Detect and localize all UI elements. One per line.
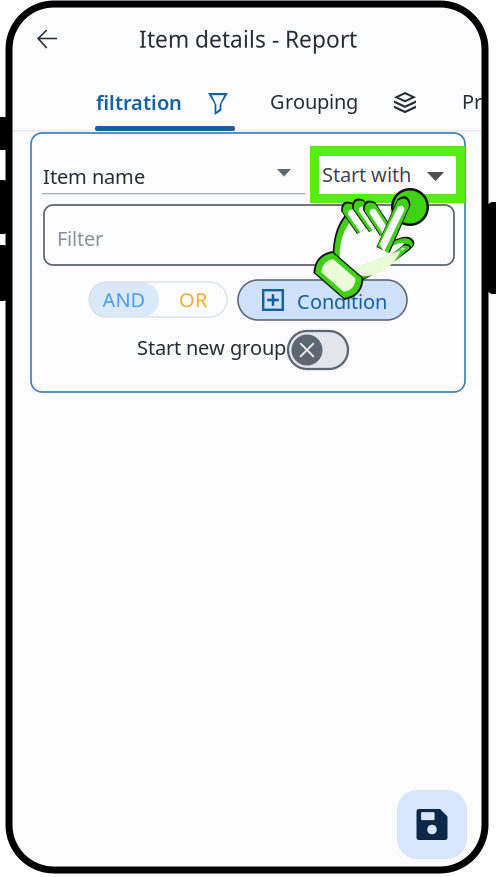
staticText: Filter [57, 225, 103, 252]
staticText: AND [102, 286, 145, 313]
staticText: Condition [297, 288, 387, 315]
button[interactable]: Filter [44, 205, 454, 265]
staticText: Grouping [270, 88, 358, 115]
staticText: Pre [462, 88, 493, 115]
button[interactable]: Pre [462, 73, 496, 131]
button[interactable]: Back [22, 17, 72, 61]
staticText: Item name [43, 163, 145, 190]
button[interactable]: Start new group [288, 331, 348, 369]
staticText: filtration [96, 89, 182, 116]
button[interactable]: AND [89, 282, 159, 317]
staticText: Item details - Report [139, 24, 357, 54]
staticText: Start with [322, 161, 411, 188]
staticText: Start new group [137, 334, 286, 361]
staticText: OR [179, 286, 207, 313]
button[interactable]: Grouping [273, 73, 413, 131]
button[interactable]: Condition [238, 280, 407, 320]
button[interactable]: OR [159, 282, 227, 317]
button[interactable]: filtration [95, 73, 235, 131]
button[interactable]: Save [397, 790, 467, 859]
button[interactable]: Item name [31, 133, 305, 195]
